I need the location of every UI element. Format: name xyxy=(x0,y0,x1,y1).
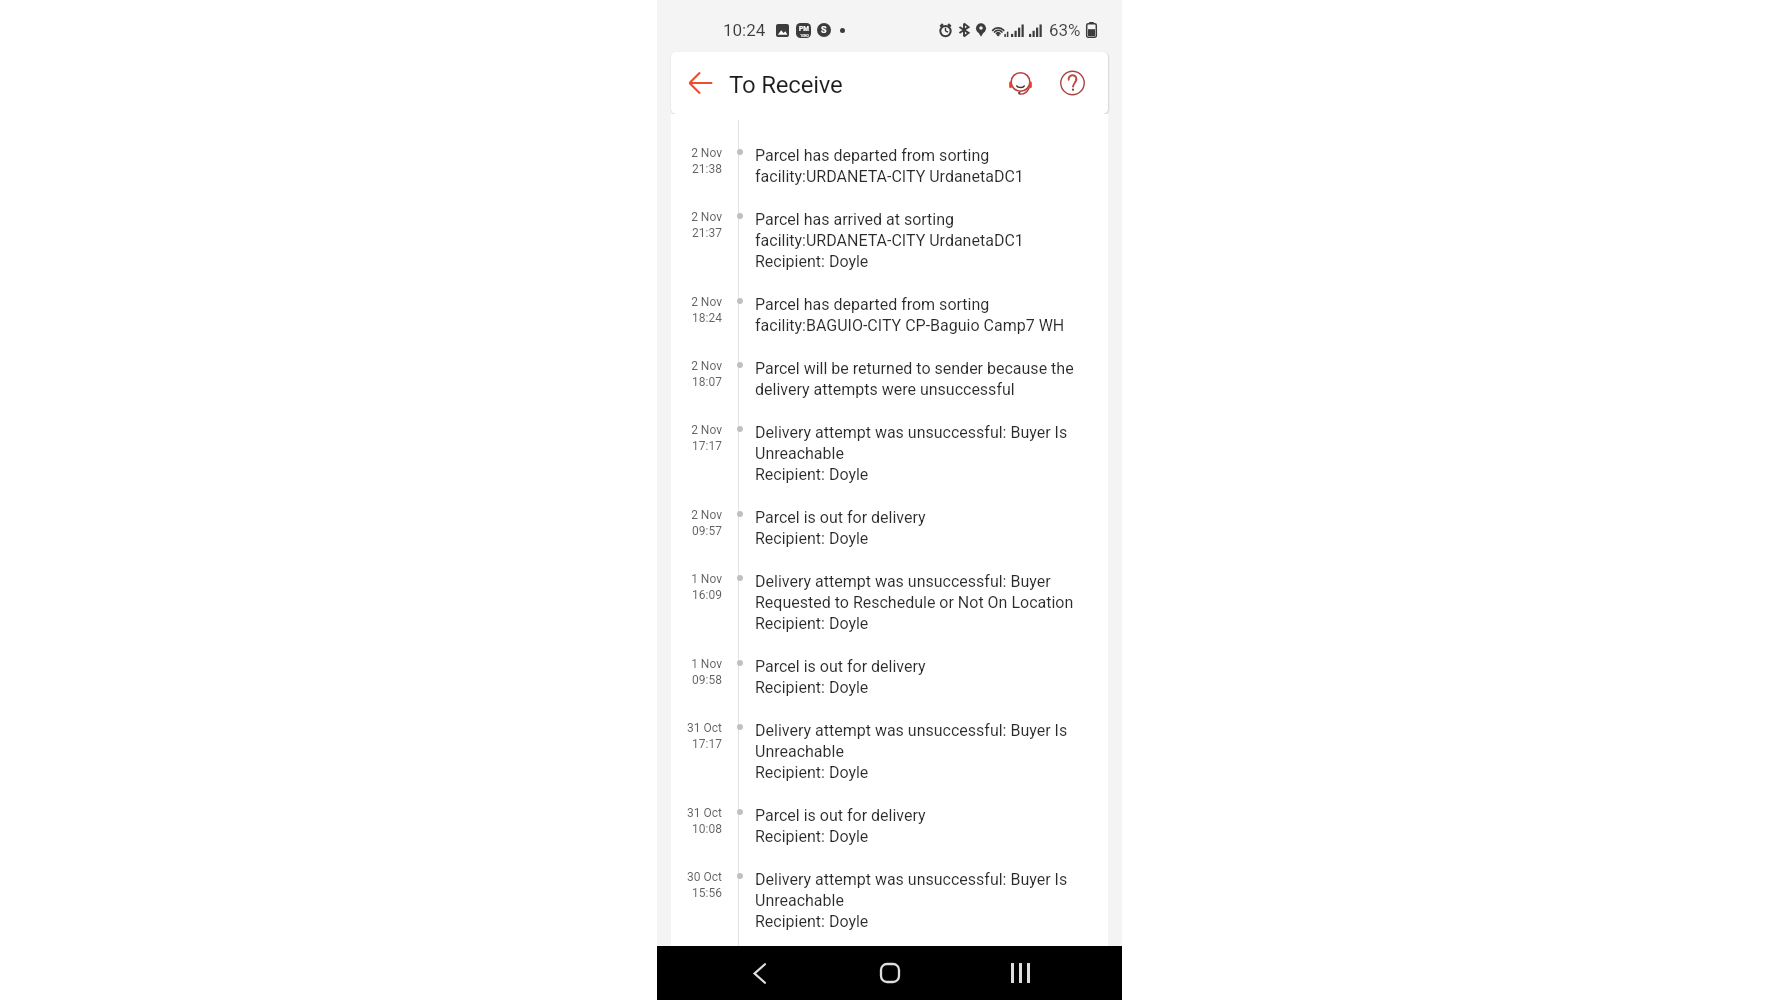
staticText: Parcel is out for delivery Recipient: Do… xyxy=(755,657,926,697)
button[interactable]: 31 Oct 10:08 xyxy=(671,802,1108,866)
staticText: Delivery attempt was unsuccessful: Buyer… xyxy=(755,870,1068,931)
button[interactable]: Back xyxy=(681,63,721,103)
staticText: 2 Nov 18:24 xyxy=(691,295,722,325)
button[interactable]: Recents xyxy=(955,946,1085,1000)
button[interactable]: 2 Nov 18:24 xyxy=(671,291,1108,355)
button[interactable]: 2 Nov 17:17 xyxy=(671,419,1108,504)
button[interactable]: 31 Oct 17:17 xyxy=(671,717,1108,802)
staticText: 31 Oct 10:08 xyxy=(687,806,722,836)
staticText: Delivery attempt was unsuccessful: Buyer… xyxy=(755,572,1074,633)
staticText: PM xyxy=(799,25,809,33)
button[interactable]: 1 Nov 09:58 xyxy=(671,653,1108,717)
staticText: 2 Nov 21:38 xyxy=(691,146,722,176)
staticText: S xyxy=(821,25,827,36)
button[interactable]: 2 Nov 09:57 xyxy=(671,504,1108,568)
staticText: 2 Nov 21:37 xyxy=(691,210,722,240)
button[interactable]: Back xyxy=(694,946,825,1000)
button[interactable]: Help xyxy=(1049,60,1095,106)
button[interactable]: 2 Nov 18:07 xyxy=(671,355,1108,419)
staticText: Delivery attempt was unsuccessful: Buyer… xyxy=(755,721,1068,782)
button[interactable]: 2 Nov 21:38 xyxy=(671,142,1108,206)
staticText: Parcel is out for delivery Recipient: Do… xyxy=(755,508,926,548)
staticText: Parcel has departed from sorting facilit… xyxy=(755,295,1065,335)
staticText: 31 Oct 17:17 xyxy=(687,721,722,751)
staticText: Parcel is out for delivery Recipient: Do… xyxy=(755,806,926,846)
button[interactable]: Home xyxy=(825,946,955,1000)
staticText: 2 Nov 17:17 xyxy=(691,423,722,453)
button[interactable]: 30 Oct 15:56 xyxy=(671,866,1108,951)
staticText: 2 Nov 09:57 xyxy=(691,508,722,538)
button[interactable]: Customer support xyxy=(997,60,1043,106)
staticText: Parcel has departed from sorting facilit… xyxy=(755,146,1024,186)
staticText: Parcel has arrived at sorting facility:U… xyxy=(755,210,1024,271)
staticText: Parcel will be returned to sender becaus… xyxy=(755,359,1074,399)
staticText: 30 Oct 15:56 xyxy=(687,870,722,900)
button[interactable]: 2 Nov 21:37 xyxy=(671,206,1108,291)
staticText: 1 Nov 16:09 xyxy=(691,572,722,602)
staticText: To Receive xyxy=(729,71,843,99)
button[interactable]: 1 Nov 16:09 xyxy=(671,568,1108,653)
staticText: Delivery attempt was unsuccessful: Buyer… xyxy=(755,423,1068,484)
staticText: 2 Nov 18:07 xyxy=(691,359,722,389)
staticText: 63% xyxy=(1049,20,1081,40)
staticText: 1080 xyxy=(800,33,809,37)
staticText: 10:24 xyxy=(723,20,766,40)
staticText: 1 Nov 09:58 xyxy=(691,657,722,687)
